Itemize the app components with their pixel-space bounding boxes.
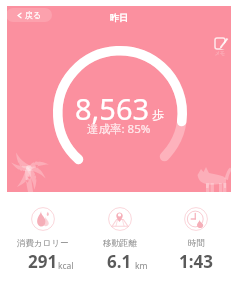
staticText: 1:43 xyxy=(179,250,213,273)
button[interactable]: 移動距離 xyxy=(81,207,158,273)
staticText: 歩 xyxy=(152,107,164,122)
button[interactable]: 時間 xyxy=(158,207,234,273)
staticText: 戻る xyxy=(25,10,42,20)
staticText: 昨日 xyxy=(110,12,128,23)
staticText: 達成率: 85% xyxy=(87,121,151,137)
staticText: 6.1 xyxy=(107,250,132,273)
staticText: メモ xyxy=(215,50,226,56)
staticText: 291 xyxy=(28,250,58,273)
button[interactable]: メモ xyxy=(208,32,232,56)
staticText: 時間 xyxy=(188,238,205,249)
staticText: 8,563 xyxy=(75,89,150,128)
staticText: km xyxy=(135,260,148,272)
staticText: kcal xyxy=(58,260,74,272)
button[interactable]: 戻る xyxy=(6,8,52,22)
button[interactable]: 消費カロリー xyxy=(5,207,81,273)
staticText: 消費カロリー xyxy=(17,238,69,249)
staticText: 移動距離 xyxy=(103,238,137,249)
